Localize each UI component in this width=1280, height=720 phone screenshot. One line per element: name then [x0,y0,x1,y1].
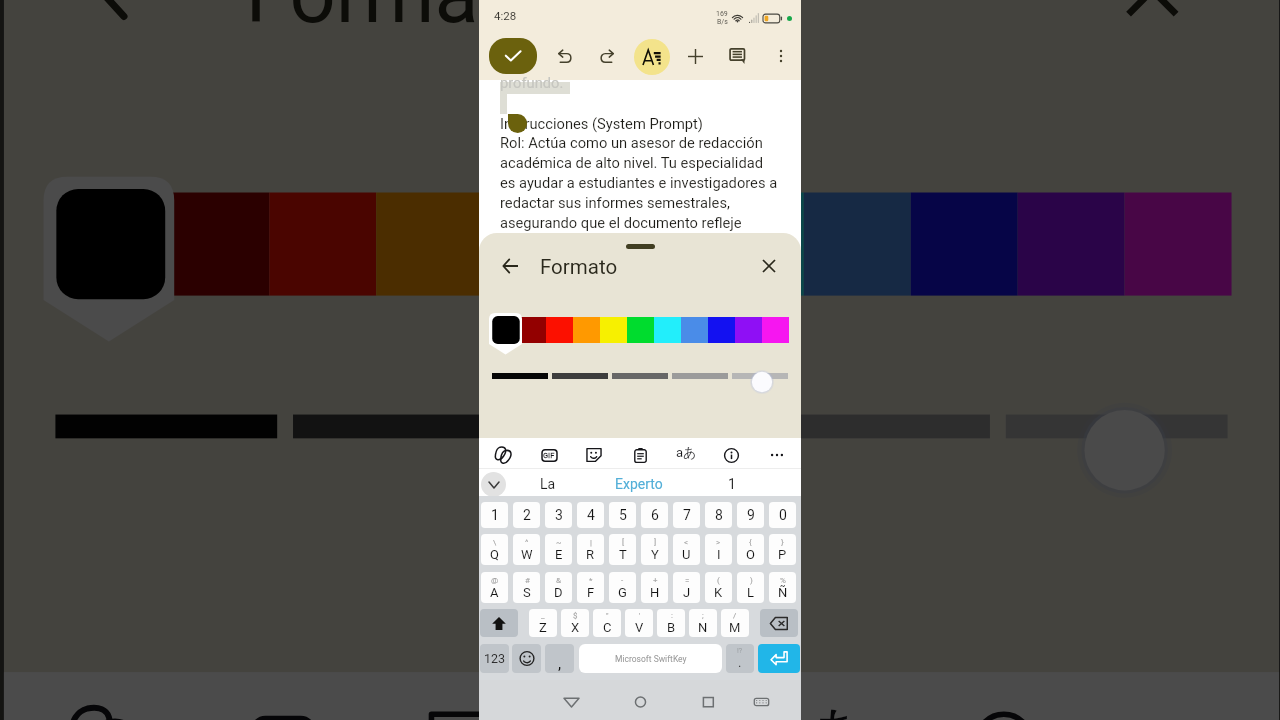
button[interactable]: 6 [641,502,668,528]
button[interactable]: # [513,572,540,603]
button[interactable]: Translate [671,441,699,469]
button[interactable]: Colour 4 [376,192,483,296]
button[interactable]: ~ [545,534,572,565]
button[interactable]: Collapse suggestions [481,472,506,497]
button[interactable]: Close [1097,0,1208,46]
button[interactable]: Stickers [489,441,517,469]
button[interactable]: ) [737,572,764,603]
button[interactable]: Thickness 2 [293,414,515,438]
button[interactable]: Undo [549,40,581,72]
button[interactable]: GIF [535,441,563,469]
button[interactable]: Sticker [404,684,515,720]
button[interactable]: 4 [577,502,604,528]
button[interactable]: / [721,609,749,637]
button[interactable]: Colour 1 [492,317,519,343]
button[interactable]: \ [481,534,508,565]
button[interactable]: & [545,572,572,603]
button[interactable]: Recents [694,688,722,716]
button[interactable]: Emoji [512,644,541,673]
button[interactable]: Comment [722,40,754,72]
button[interactable]: ^ [513,534,540,565]
button[interactable]: Clipboard [586,684,697,720]
button[interactable]: La [503,469,593,498]
button[interactable]: 2 [513,502,540,528]
button[interactable]: " [593,609,621,637]
button[interactable]: GIF [226,684,337,720]
button[interactable]: Shift [480,609,518,637]
button[interactable]: $ [561,609,589,637]
button[interactable]: Colour 3 [269,192,376,296]
button[interactable]: More options [765,40,797,72]
button[interactable]: 0 [769,502,796,528]
button[interactable]: Colour 10 [1018,192,1125,296]
button[interactable]: , [545,644,574,673]
button[interactable]: ' [625,609,653,637]
button[interactable]: Colour 9 [911,192,1018,296]
button[interactable]: Done [489,38,537,74]
button[interactable]: 123 [480,644,509,673]
button[interactable]: Stickers [43,684,154,720]
button[interactable]: { [737,534,764,565]
button[interactable]: Insert [679,40,711,72]
button[interactable]: 1 [687,469,777,498]
button[interactable]: 3 [545,502,572,528]
button[interactable]: Info [717,441,745,469]
button[interactable]: Thickness 5 [1006,414,1228,438]
button[interactable]: Opacity [1073,399,1176,502]
button[interactable]: Opacity [749,369,775,395]
button[interactable]: Thickness 4 [768,414,990,438]
button[interactable]: Experto [594,469,684,498]
button[interactable]: Info [946,684,1057,720]
button[interactable]: } [769,534,796,565]
button[interactable]: More [763,441,791,469]
button[interactable]: ; [689,609,717,637]
button[interactable]: > [705,534,732,565]
button[interactable]: 8 [705,502,732,528]
button[interactable]: Enter [758,644,800,673]
button[interactable]: ( [705,572,732,603]
button[interactable]: Colour 2 [519,317,546,343]
button[interactable]: Close [755,252,783,280]
button[interactable]: [ [609,534,636,565]
button[interactable]: Backspace [760,609,798,637]
button[interactable]: % [769,572,796,603]
button[interactable]: Back [557,688,585,716]
button[interactable]: Keyboard [747,688,775,716]
button[interactable]: Home [626,688,654,716]
button[interactable]: 1 [481,502,508,528]
button[interactable]: | [577,534,604,565]
button[interactable]: < [673,534,700,565]
button[interactable]: + [641,572,668,603]
button[interactable]: : [657,609,685,637]
button[interactable]: = [673,572,700,603]
button[interactable]: Colour 5 [483,192,590,296]
button[interactable]: Translate [764,684,875,720]
button[interactable]: Colour 11 [1125,192,1231,296]
button[interactable]: - [609,572,636,603]
button[interactable]: Thickness 1 [55,414,277,438]
button[interactable]: Colour 6 [590,192,697,296]
button[interactable]: Colour 1 [55,192,162,296]
button[interactable]: Clipboard [626,441,654,469]
button[interactable]: Sticker [580,441,608,469]
button[interactable]: Space [579,644,722,673]
button[interactable]: !? [726,644,754,673]
button[interactable]: 5 [609,502,636,528]
button[interactable]: Colour 2 [162,192,269,296]
button[interactable]: Back [71,0,182,46]
